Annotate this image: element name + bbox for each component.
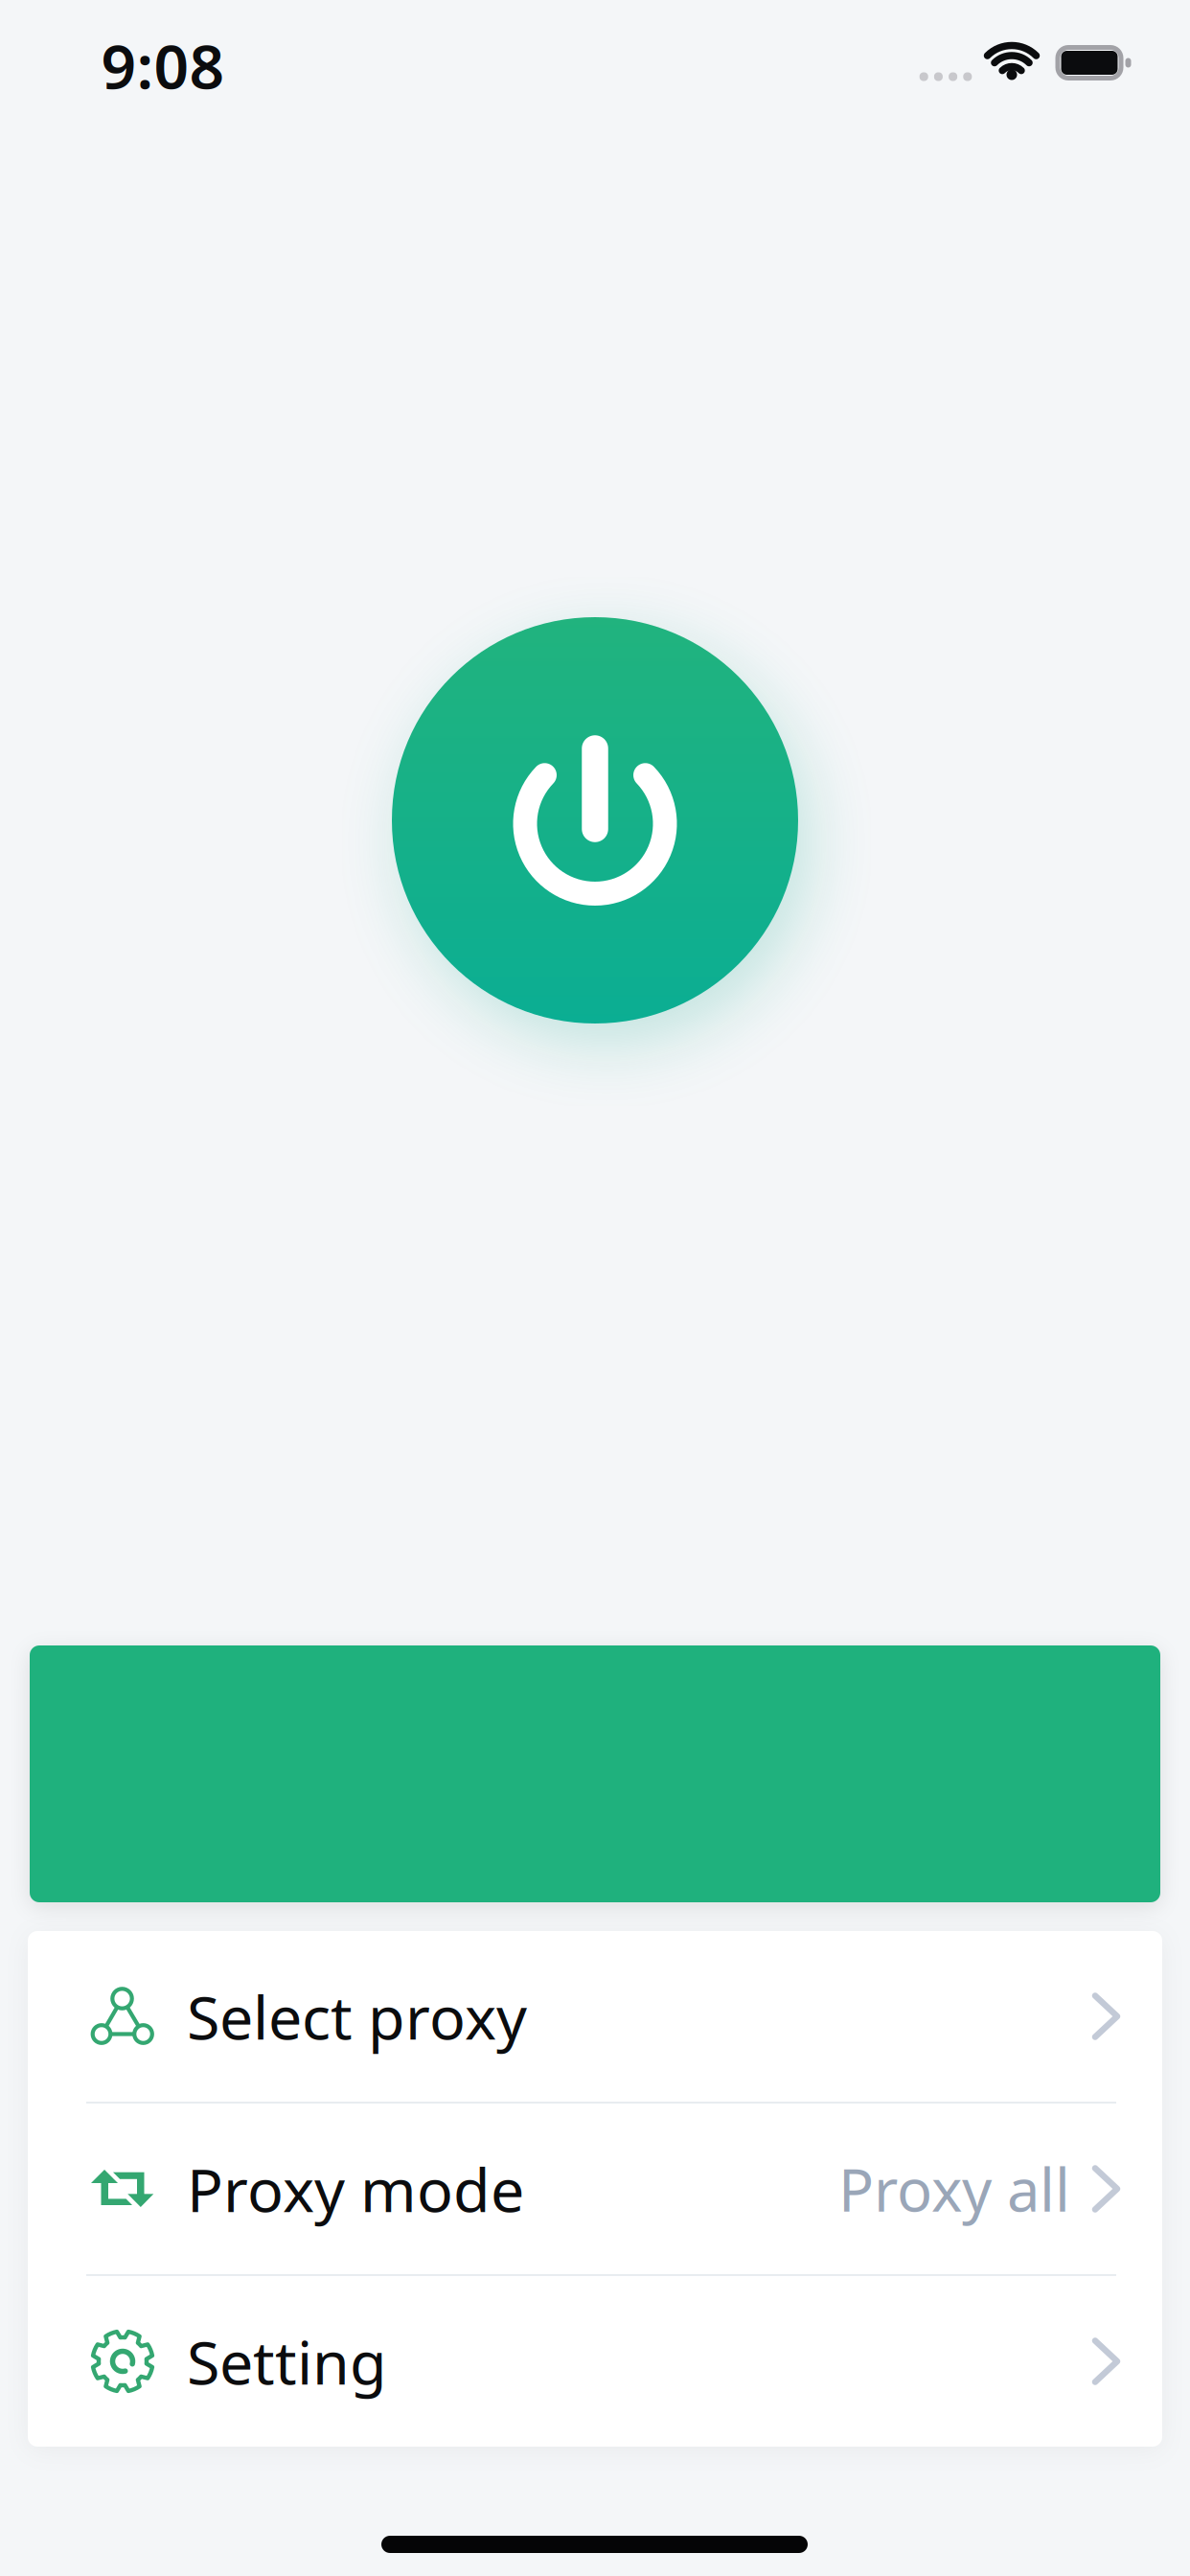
staticText: Proxy mode (187, 2149, 524, 2229)
button[interactable]: Proxy mode (28, 2104, 1162, 2274)
button[interactable]: Setting (28, 2276, 1162, 2447)
button[interactable]: Power (392, 617, 798, 1023)
staticText: 9:08 (101, 24, 225, 106)
staticText: Proxy all (838, 2150, 1070, 2228)
button[interactable]: Select proxy (28, 1931, 1162, 2102)
staticText: Setting (187, 2321, 387, 2401)
staticText: Select proxy (187, 1976, 527, 2056)
button[interactable]: Banner (30, 1645, 1160, 1902)
